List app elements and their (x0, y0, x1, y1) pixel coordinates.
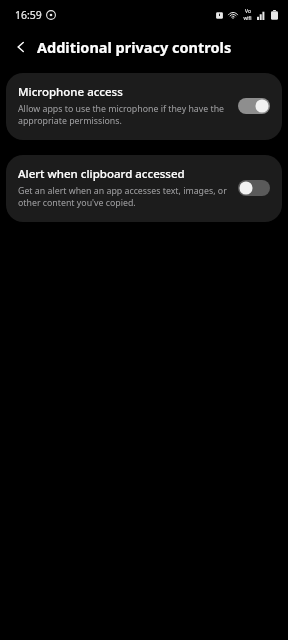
staticText: 16:59 (15, 8, 42, 22)
staticText: Allow apps to use the microphone if they… (18, 103, 225, 127)
button[interactable]: Off (235, 177, 273, 199)
staticText: wifi (243, 15, 252, 22)
button[interactable]: On (235, 95, 273, 117)
staticText: Get an alert when an app accesses text, … (18, 185, 227, 209)
button[interactable]: Microphone access (6, 73, 282, 140)
staticText: Additional privacy controls (37, 37, 232, 57)
staticText: Microphone access (18, 84, 123, 100)
button[interactable]: Back (8, 34, 34, 60)
staticText: Alert when clipboard accessed (18, 166, 185, 182)
staticText: Vo (245, 8, 251, 15)
button[interactable]: Alert when clipboard accessed (6, 155, 282, 222)
